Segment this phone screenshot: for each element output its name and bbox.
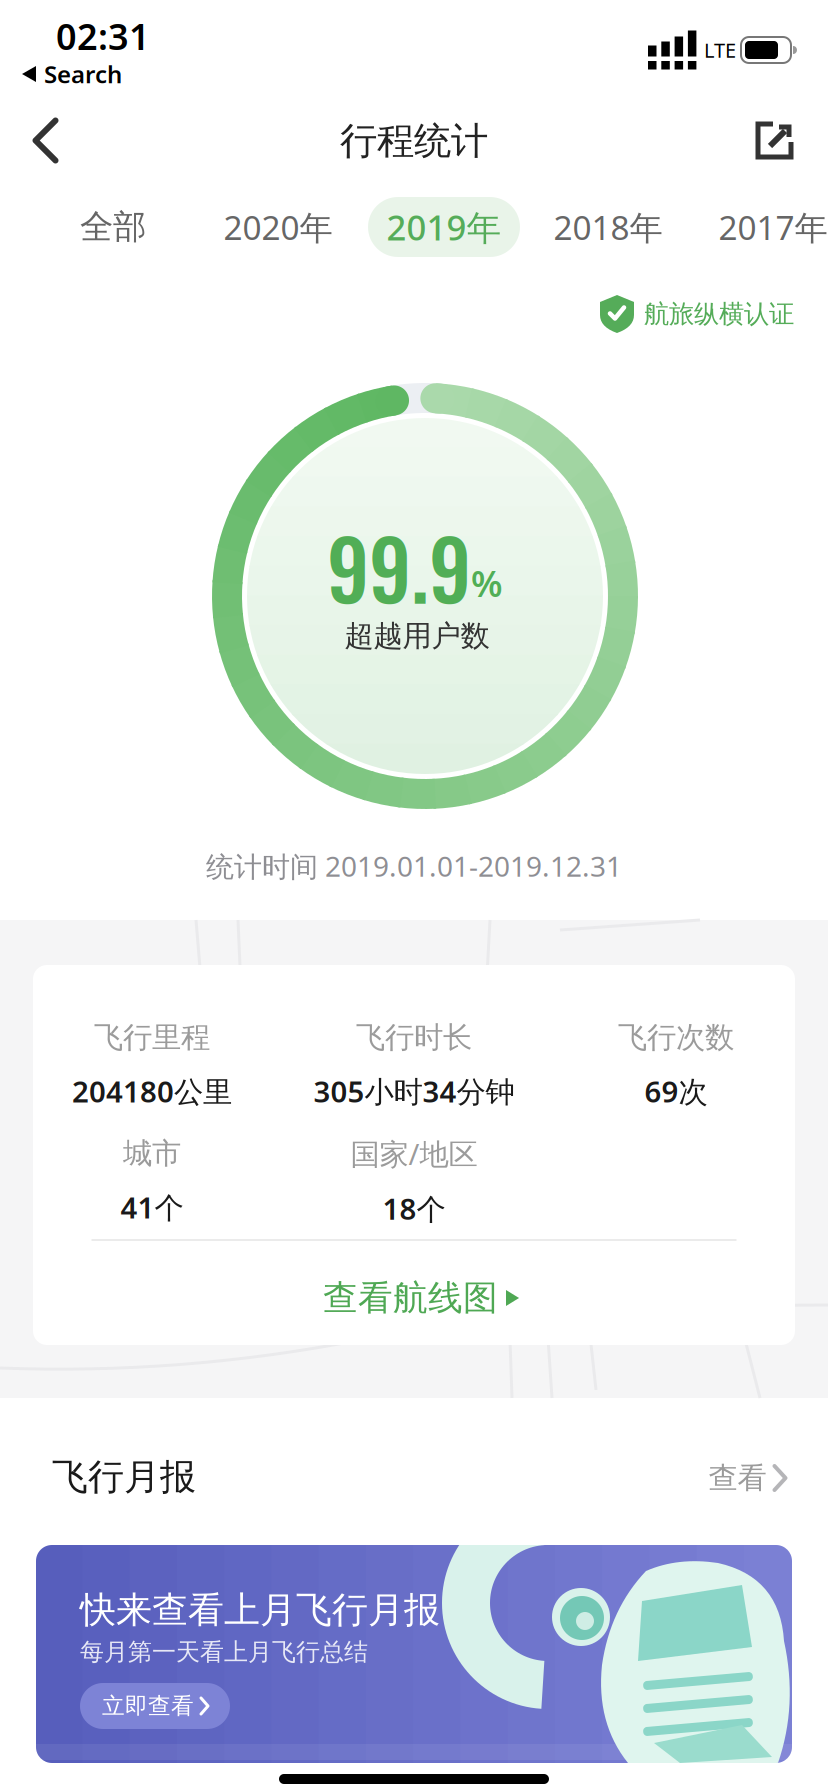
button[interactable]: Back (32, 118, 59, 163)
staticText: 2019年 (386, 204, 501, 250)
staticText: 2020年 (223, 205, 332, 249)
staticText: 飞行里程 (94, 1019, 210, 1055)
button[interactable]: Share (754, 120, 794, 160)
button[interactable]: 2017年 (718, 205, 827, 249)
button[interactable]: 2020年 (223, 205, 332, 249)
staticText: 快来查看上月飞行月报 (80, 1588, 440, 1632)
staticText: 查看航线图 (323, 1277, 498, 1319)
staticText: 305小时34分钟 (313, 1071, 514, 1110)
staticText: Search (44, 58, 122, 90)
staticText: 飞行次数 (618, 1019, 734, 1055)
staticText: 每月第一天看上月飞行总结 (80, 1637, 368, 1667)
button[interactable]: 查看航线图 (323, 1277, 519, 1319)
staticText: 99.9 (327, 507, 471, 627)
staticText: 立即查看 (102, 1692, 194, 1720)
staticText: 02:31 (56, 12, 150, 60)
staticText: 2018年 (553, 205, 662, 249)
button[interactable]: 2018年 (553, 205, 662, 249)
staticText: 航旅纵横认证 (644, 298, 794, 329)
button[interactable]: Search (22, 58, 122, 90)
staticText: 城市 (123, 1135, 181, 1171)
staticText: 18个 (382, 1189, 445, 1228)
button[interactable]: 查看 (708, 1460, 785, 1496)
staticText: 69次 (644, 1071, 707, 1110)
staticText: 统计时间 2019.01.01-2019.12.31 (206, 847, 622, 885)
staticText: 国家/地区 (350, 1134, 477, 1173)
staticText: % (471, 559, 503, 607)
button[interactable]: 快来查看上月飞行月报 (36, 1545, 792, 1763)
staticText: 飞行月报 (52, 1455, 196, 1499)
staticText: 2017年 (718, 205, 827, 249)
staticText: 行程统计 (340, 118, 488, 164)
staticText: 超越用户数 (344, 618, 489, 654)
staticText: LTE (704, 37, 736, 63)
staticText: 查看 (708, 1460, 766, 1496)
staticText: 204180公里 (72, 1071, 232, 1110)
button[interactable]: 2019年 (368, 197, 520, 257)
staticText: 41个 (120, 1187, 183, 1226)
staticText: 全部 (80, 206, 146, 247)
button[interactable]: 全部 (80, 206, 146, 247)
staticText: 飞行时长 (356, 1019, 472, 1055)
